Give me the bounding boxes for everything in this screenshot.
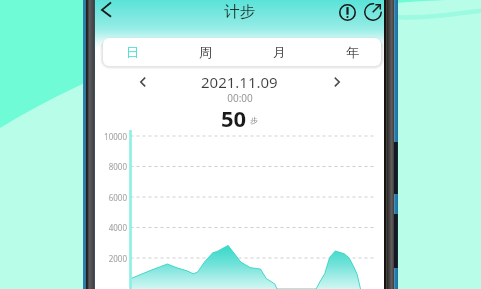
staticText: 10000 bbox=[97, 131, 127, 142]
button[interactable]: 月 bbox=[242, 38, 316, 66]
staticText: 2021.11.09 bbox=[201, 72, 278, 91]
button[interactable]: Share bbox=[362, 1, 384, 23]
staticText: 8000 bbox=[97, 161, 127, 172]
button[interactable]: Info bbox=[336, 1, 358, 23]
staticText: 步 bbox=[250, 116, 258, 125]
button[interactable]: 年 bbox=[315, 38, 389, 66]
staticText: 50 bbox=[221, 103, 247, 127]
button[interactable]: Back bbox=[96, 0, 120, 22]
button[interactable]: Next bbox=[328, 73, 345, 90]
staticText: 日 bbox=[126, 44, 139, 60]
staticText: 4000 bbox=[97, 222, 127, 233]
staticText: 周 bbox=[199, 44, 212, 60]
staticText: 6000 bbox=[97, 192, 127, 203]
staticText: 计步 bbox=[224, 2, 255, 22]
staticText: 月 bbox=[273, 44, 286, 60]
staticText: 00:00 bbox=[227, 91, 253, 105]
button[interactable]: Previous bbox=[134, 73, 151, 90]
button[interactable]: 周 bbox=[168, 38, 242, 66]
staticText: 年 bbox=[346, 44, 359, 60]
button[interactable]: 日 bbox=[95, 38, 169, 66]
staticText: 2000 bbox=[97, 253, 127, 264]
